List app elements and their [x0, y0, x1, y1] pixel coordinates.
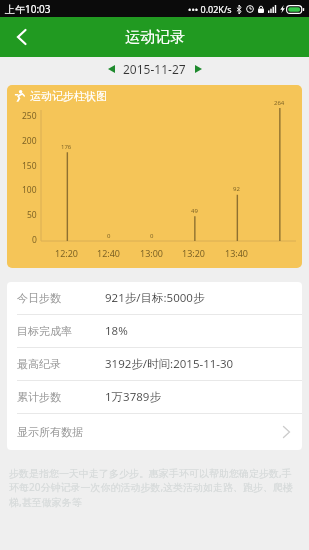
button[interactable]: 显示所有数据 — [7, 414, 302, 450]
staticText: 12:20 — [55, 247, 79, 259]
staticText: 最高纪录 — [17, 357, 61, 371]
staticText: 150 — [22, 160, 37, 172]
staticText: 2015-11-27 — [123, 61, 186, 77]
staticText: 3192步/时间:2015-11-30 — [105, 356, 234, 372]
staticText: 13:40 — [225, 247, 249, 259]
button[interactable]: 目标完成率 — [7, 315, 302, 347]
staticText: 176 — [61, 143, 72, 151]
staticText: 0 — [107, 232, 111, 240]
staticText: ••• 0.02K/s — [188, 3, 232, 15]
staticText: 264 — [274, 99, 285, 107]
button[interactable]: 最高纪录 — [7, 348, 302, 380]
button[interactable]: 累计步数 — [7, 381, 302, 413]
staticText: 显示所有数据 — [17, 425, 83, 439]
staticText: 49 — [191, 207, 198, 215]
button[interactable]: Next day — [188, 59, 208, 79]
staticText: 0 — [150, 232, 154, 240]
staticText: 上午10:03 — [5, 2, 51, 16]
staticText: 目标完成率 — [17, 324, 72, 338]
staticText: 今日步数 — [17, 291, 61, 305]
button[interactable]: 今日步数 — [7, 282, 302, 314]
staticText: 921步/目标:5000步 — [105, 290, 205, 306]
staticText: 18% — [105, 323, 128, 339]
staticText: 0 — [32, 234, 37, 246]
staticText: 1万3789步 — [105, 389, 161, 405]
staticText: 13:00 — [140, 247, 164, 259]
staticText: 12:40 — [97, 247, 121, 259]
button[interactable]: Previous day — [101, 59, 121, 79]
staticText: 250 — [22, 110, 37, 122]
button[interactable]: Back — [0, 17, 42, 57]
staticText: 步数是指您一天中走了多少步。惠家手环可以帮助您确定步数,手环每20分钟记录一次你… — [9, 466, 300, 509]
staticText: 50 — [27, 209, 37, 221]
staticText: 100 — [22, 184, 37, 196]
staticText: 200 — [22, 135, 37, 147]
staticText: 运动记步柱状图 — [30, 89, 107, 103]
staticText: 13:20 — [182, 247, 206, 259]
staticText: 运动记录 — [125, 28, 185, 47]
staticText: 累计步数 — [17, 390, 61, 404]
staticText: 92 — [233, 185, 240, 193]
